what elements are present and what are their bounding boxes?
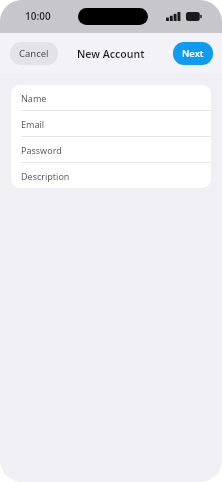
staticText: New Account [77, 47, 145, 61]
button[interactable]: Next [173, 42, 213, 65]
button[interactable]: Email [11, 111, 211, 136]
staticText: Description [21, 170, 70, 182]
staticText: Email [21, 118, 45, 130]
button[interactable]: Password [11, 137, 211, 162]
staticText: Password [21, 144, 62, 156]
staticText: Next [182, 47, 204, 60]
button[interactable]: Description [11, 163, 211, 188]
button[interactable]: Name [11, 85, 211, 110]
button[interactable]: Cancel [10, 42, 58, 65]
staticText: Cancel [19, 47, 49, 60]
staticText: Name [21, 92, 47, 104]
staticText: 10:00 [25, 9, 51, 23]
